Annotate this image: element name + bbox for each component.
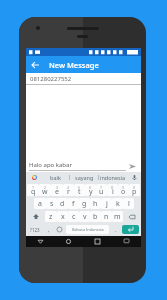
staticText: q — [31, 187, 36, 196]
button[interactable]: Recents — [83, 236, 112, 247]
button[interactable]: 2 — [39, 184, 51, 196]
button[interactable]: 0 — [129, 184, 140, 196]
staticText: i — [112, 187, 114, 196]
button[interactable]: z — [45, 211, 57, 222]
button[interactable]: 6 — [85, 184, 96, 196]
button[interactable]: b — [90, 211, 101, 222]
staticText: c — [72, 212, 76, 222]
staticText: r — [67, 187, 70, 196]
staticText: ?123 — [30, 227, 40, 233]
staticText: Bahasa Indonesia — [72, 227, 104, 232]
staticText: g — [82, 199, 87, 209]
staticText: m — [114, 212, 121, 222]
button[interactable]: c — [68, 211, 79, 222]
button[interactable]: Google — [26, 172, 42, 183]
button[interactable]: n — [101, 211, 112, 222]
button[interactable]: Bahasa Indonesia — [66, 225, 109, 234]
staticText: p — [132, 187, 137, 196]
staticText: indonesia — [100, 174, 126, 181]
staticText: 5 — [78, 185, 81, 190]
staticText: f — [72, 199, 75, 209]
button[interactable]: sayang — [70, 172, 98, 183]
button[interactable]: Back — [26, 56, 43, 73]
staticText: a — [38, 199, 42, 209]
button[interactable]: 8 — [107, 184, 118, 196]
staticText: d — [60, 199, 65, 209]
staticText: j — [106, 199, 108, 209]
button[interactable]: Hide keyboard — [112, 236, 141, 247]
staticText: 2 — [44, 185, 47, 190]
button[interactable]: , — [43, 224, 54, 235]
button[interactable]: Enter — [122, 225, 139, 234]
staticText: u — [99, 187, 104, 196]
button[interactable]: a — [34, 198, 46, 209]
button[interactable]: s — [46, 198, 57, 209]
staticText: 7 — [100, 185, 103, 190]
button[interactable]: 9 — [118, 184, 129, 196]
staticText: sayang — [75, 174, 94, 181]
button[interactable]: Back — [26, 236, 54, 247]
staticText: baik — [50, 174, 61, 181]
staticText: , — [48, 226, 50, 234]
staticText: v — [83, 212, 87, 222]
button[interactable]: Voice input — [127, 172, 141, 183]
staticText: b — [93, 212, 98, 222]
staticText: Halo apo kabar — [29, 161, 72, 169]
staticText: o — [121, 187, 126, 196]
staticText: l — [128, 199, 130, 209]
button[interactable]: l — [123, 198, 134, 209]
staticText: y — [89, 187, 93, 196]
staticText: . — [115, 226, 117, 234]
staticText: k — [116, 199, 120, 209]
staticText: 4 — [67, 185, 70, 190]
button[interactable]: x — [57, 211, 68, 222]
staticText: 6 — [89, 185, 92, 190]
button[interactable]: 081280227552 — [26, 73, 141, 84]
button[interactable]: h — [90, 198, 101, 209]
button[interactable]: f — [68, 198, 79, 209]
button[interactable]: k — [112, 198, 123, 209]
button[interactable]: g — [79, 198, 90, 209]
button[interactable]: m — [112, 211, 123, 222]
staticText: x — [61, 212, 65, 222]
staticText: e — [55, 187, 59, 196]
button[interactable]: 7 — [96, 184, 107, 196]
staticText: t — [78, 187, 81, 196]
staticText: w — [42, 187, 48, 196]
button[interactable]: v — [79, 211, 90, 222]
staticText: h — [93, 199, 98, 209]
staticText: New Message — [49, 60, 99, 70]
staticText: 0 — [133, 185, 136, 190]
button[interactable]: d — [57, 198, 68, 209]
staticText: s — [50, 199, 54, 209]
staticText: 1 — [32, 185, 35, 190]
staticText: 8 — [111, 185, 114, 190]
button[interactable]: Emoji — [54, 224, 65, 235]
button[interactable]: Send — [126, 160, 138, 172]
button[interactable]: Backspace — [123, 211, 140, 222]
staticText: z — [49, 212, 53, 222]
staticText: 081280227552 — [30, 75, 72, 83]
button[interactable]: baik — [42, 172, 69, 183]
button[interactable]: Home — [54, 236, 83, 247]
button[interactable]: 3 — [51, 184, 63, 196]
staticText: n — [104, 212, 109, 222]
button[interactable]: 5 — [74, 184, 85, 196]
button[interactable]: indonesia — [99, 172, 127, 183]
button[interactable]: j — [101, 198, 112, 209]
button[interactable]: Shift — [27, 211, 45, 222]
staticText: 3 — [56, 185, 59, 190]
button[interactable]: 1 — [27, 184, 39, 196]
staticText: 9 — [122, 185, 125, 190]
button[interactable]: ?123 — [27, 224, 43, 235]
button[interactable]: . — [110, 224, 121, 235]
button[interactable]: 4 — [63, 184, 74, 196]
